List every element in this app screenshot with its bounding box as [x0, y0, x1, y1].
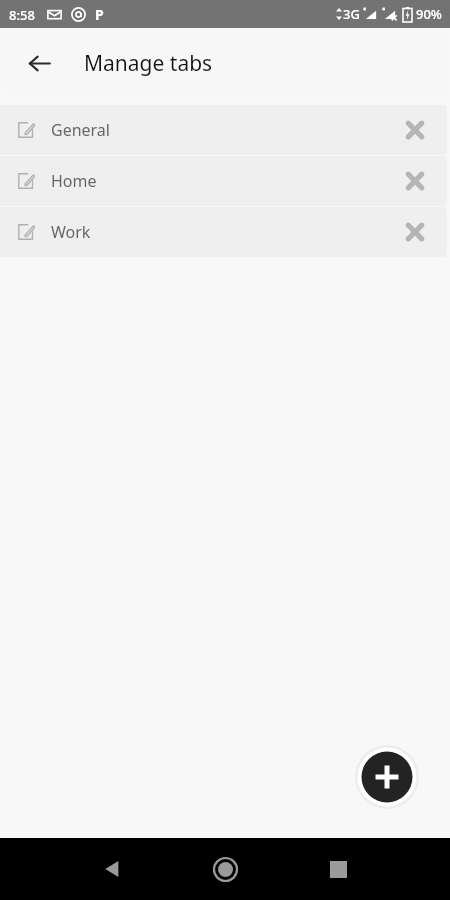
button[interactable]: Back: [88, 845, 136, 893]
button[interactable]: Delete General: [397, 112, 433, 148]
button[interactable]: Home: [0, 156, 447, 206]
button[interactable]: General: [0, 105, 447, 155]
button[interactable]: Work: [0, 207, 447, 257]
staticText: 90%: [416, 5, 442, 23]
staticText: Work: [51, 221, 91, 243]
staticText: P: [95, 5, 104, 24]
button[interactable]: Add tab: [354, 744, 420, 810]
staticText: 3G: [343, 5, 360, 23]
staticText: Home: [51, 170, 97, 192]
button[interactable]: Delete Home: [397, 163, 433, 199]
button[interactable]: Back: [17, 41, 61, 85]
button[interactable]: Home: [201, 845, 249, 893]
staticText: 8:58: [9, 6, 35, 24]
button[interactable]: Delete Work: [397, 214, 433, 250]
button[interactable]: Recent apps: [314, 845, 362, 893]
staticText: Manage tabs: [84, 49, 213, 78]
staticText: General: [51, 119, 110, 141]
